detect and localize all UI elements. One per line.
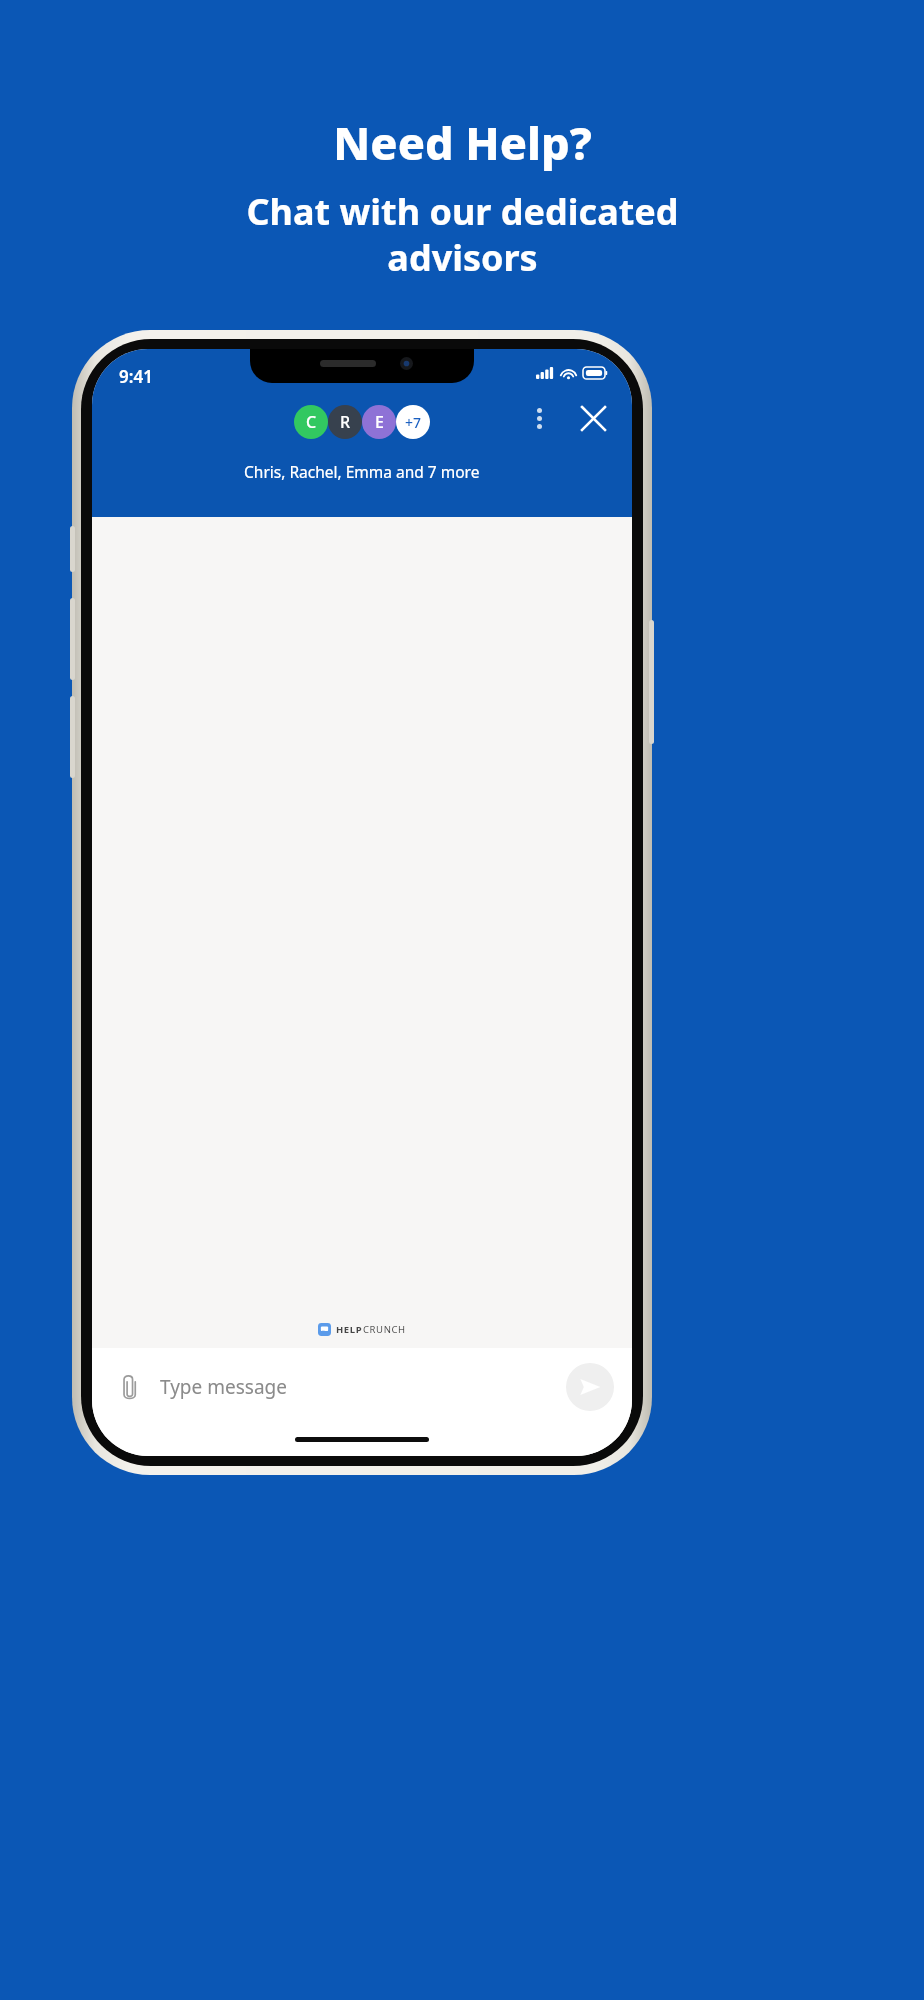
staticText: R: [340, 411, 351, 433]
button[interactable]: HELP: [318, 1323, 406, 1336]
button[interactable]: C: [294, 405, 430, 439]
button[interactable]: More options: [522, 401, 556, 435]
staticText: C: [306, 411, 317, 433]
staticText: Chris, Rachel, Emma and 7 more: [244, 461, 480, 482]
staticText: CRUNCH: [363, 1323, 406, 1336]
staticText: Need Help?: [333, 112, 592, 173]
staticText: 9:41: [119, 365, 153, 388]
staticText: Chat with our dedicated advisors: [246, 187, 679, 282]
staticText: HELP: [336, 1323, 363, 1336]
button[interactable]: Attach file: [110, 1367, 150, 1407]
staticText: Type message: [160, 1374, 287, 1400]
staticText: +7: [405, 413, 422, 432]
button[interactable]: Type message: [160, 1374, 566, 1400]
staticText: E: [375, 411, 384, 433]
button[interactable]: Send message: [566, 1363, 614, 1411]
button[interactable]: Close chat: [572, 397, 614, 439]
